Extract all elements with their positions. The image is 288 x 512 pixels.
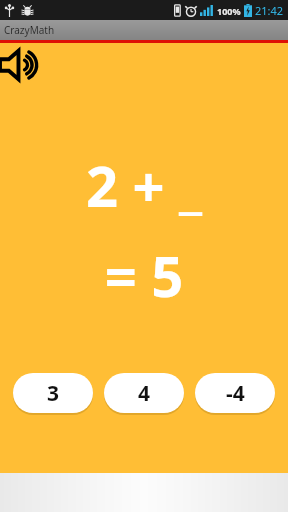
staticText: = 5 — [0, 237, 288, 313]
staticText: 3 — [47, 379, 60, 408]
staticText: 100% — [217, 5, 241, 17]
button[interactable]: 3 — [13, 373, 93, 413]
button[interactable]: -4 — [195, 373, 275, 413]
button[interactable]: Toggle sound — [0, 48, 44, 82]
staticText: -4 — [226, 379, 245, 408]
staticText: 2 + _ — [0, 147, 288, 223]
button[interactable]: 4 — [104, 373, 184, 413]
staticText: 21:42 — [255, 3, 284, 18]
staticText: 4 — [138, 379, 151, 408]
staticText: CrazyMath — [4, 23, 55, 37]
